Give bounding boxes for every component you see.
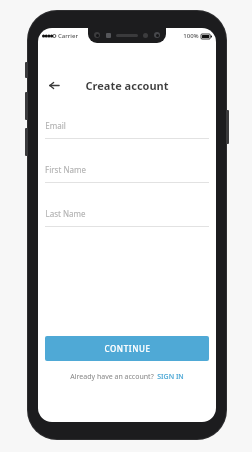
button[interactable]: Email <box>45 120 209 139</box>
staticText: Last Name <box>45 208 86 219</box>
button[interactable]: Last Name <box>45 208 209 227</box>
button[interactable]: Back <box>43 74 65 96</box>
button[interactable]: CONTINUE <box>45 336 209 361</box>
staticText: 100% <box>183 32 199 40</box>
staticText: Create account <box>85 78 169 93</box>
button[interactable]: First Name <box>45 164 209 183</box>
staticText: Email <box>45 120 66 131</box>
button[interactable]: Already have an account? <box>38 372 216 382</box>
staticText: SIGN IN <box>157 372 184 382</box>
staticText: Carrier <box>58 32 78 40</box>
staticText: Already have an account? <box>70 372 154 382</box>
staticText: CONTINUE <box>104 343 151 354</box>
staticText: First Name <box>45 164 86 175</box>
